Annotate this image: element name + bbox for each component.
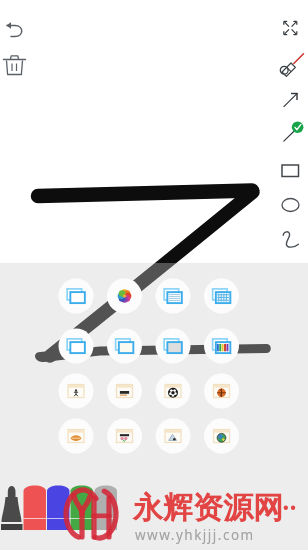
button[interactable]: Template 5 (58, 328, 94, 364)
button[interactable]: Pen (280, 52, 308, 84)
staticText: •• (283, 497, 298, 517)
button[interactable]: Rectangle (280, 158, 308, 184)
button[interactable]: Template 3 (155, 278, 191, 314)
button[interactable]: Green (70, 482, 93, 532)
button[interactable]: Template 8 (203, 328, 239, 364)
button[interactable]: Red (23, 482, 46, 532)
button[interactable]: Expand (282, 14, 306, 40)
button[interactable]: Ellipse (280, 190, 308, 216)
button[interactable]: Gray (94, 482, 117, 532)
button[interactable]: Undo (2, 18, 32, 46)
staticText: www.yhkjjj.com (135, 526, 255, 544)
button[interactable]: Template 14 (106, 418, 142, 454)
button[interactable]: Template 6 (106, 328, 142, 364)
button[interactable]: Template 2 (106, 278, 142, 314)
button[interactable]: Template 7 (155, 328, 191, 364)
button[interactable]: Template 10 (106, 373, 142, 409)
button[interactable]: Arrow (280, 90, 308, 118)
button[interactable]: Template 12 (203, 373, 239, 409)
button[interactable]: Highlighter (280, 118, 308, 150)
button[interactable]: Blue (47, 482, 70, 532)
button[interactable]: Template 16 (203, 418, 239, 454)
button[interactable]: Template 11 (155, 373, 191, 409)
button[interactable]: Template 9 (58, 373, 94, 409)
button[interactable]: Delete (0, 50, 32, 82)
button[interactable]: Template 4 (203, 278, 239, 314)
button[interactable]: Template 13 (58, 418, 94, 454)
button[interactable]: Marker (1, 482, 23, 532)
button[interactable]: Freehand (280, 220, 308, 248)
button[interactable]: Template 15 (155, 418, 191, 454)
staticText: 永辉资源网 (133, 489, 283, 527)
button[interactable]: Template 1 (58, 278, 94, 314)
